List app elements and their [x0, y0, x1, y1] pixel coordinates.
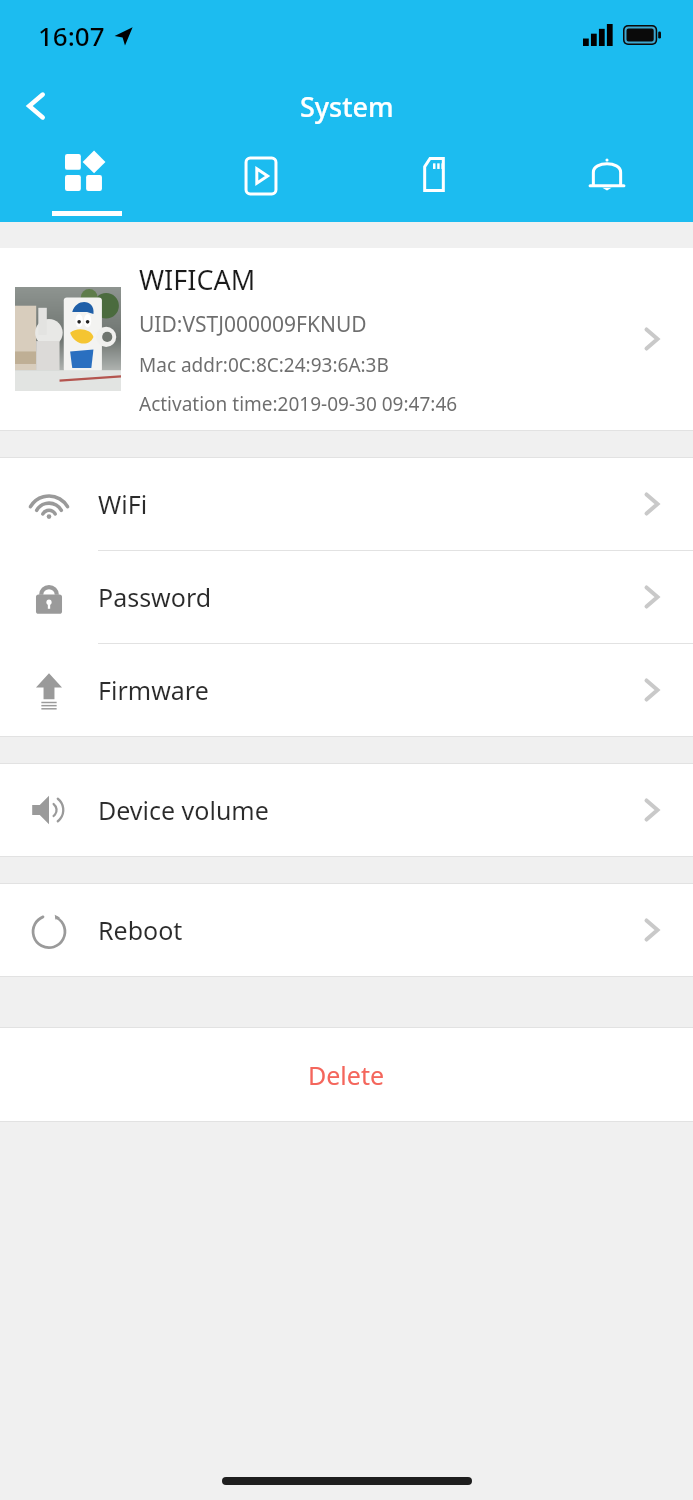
staticText: Activation time:2019-09-30 09:47:46	[139, 391, 458, 417]
button[interactable]: Firmware	[0, 644, 693, 736]
button[interactable]: Alerts	[520, 142, 693, 222]
button[interactable]: Reboot	[0, 884, 693, 976]
staticText: Firmware	[98, 673, 641, 707]
staticText: UID:VSTJ000009FKNUD	[139, 310, 367, 339]
button[interactable]: Password	[0, 551, 693, 643]
staticText: Mac addr:0C:8C:24:93:6A:3B	[139, 352, 389, 378]
staticText: 16:07	[38, 18, 105, 53]
button[interactable]: WIFICAM	[0, 248, 693, 430]
staticText: Password	[98, 580, 641, 614]
staticText: WiFi	[98, 487, 641, 521]
button[interactable]: Device volume	[0, 764, 693, 856]
button[interactable]: WiFi	[0, 458, 693, 550]
staticText: System	[300, 88, 394, 125]
button[interactable]: Playback	[174, 142, 347, 222]
staticText: WIFICAM	[139, 261, 256, 298]
button[interactable]: SD card	[347, 142, 520, 222]
button[interactable]: Delete	[0, 1028, 693, 1121]
staticText: Delete	[308, 1058, 385, 1092]
staticText: Reboot	[98, 913, 641, 947]
staticText: Device volume	[98, 793, 641, 827]
button[interactable]: Back	[0, 70, 74, 142]
button[interactable]: Devices	[0, 142, 174, 222]
